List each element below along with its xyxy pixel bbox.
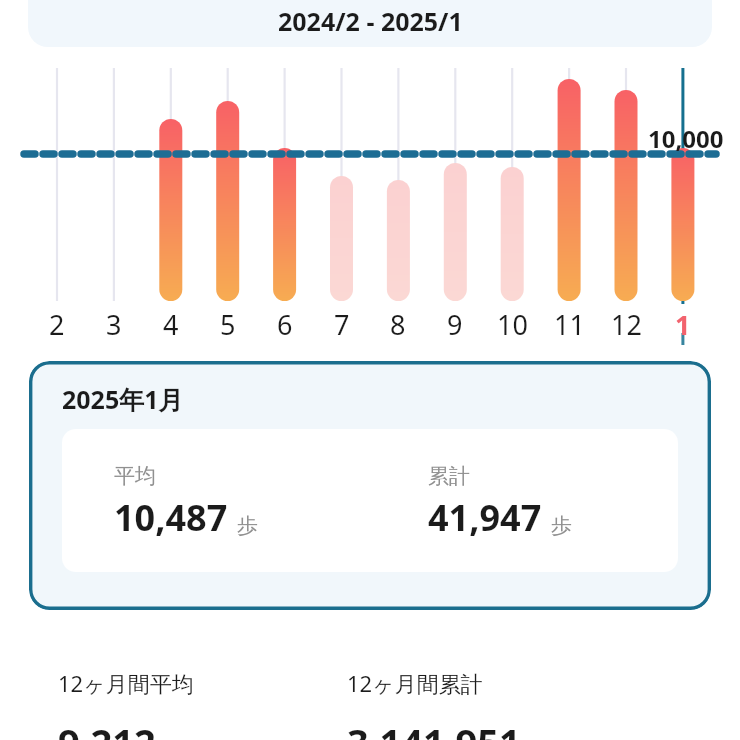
staticText: 2024/2 - 2025/1 [278,4,463,38]
staticText: 10 [497,306,528,343]
staticText: 7 [334,306,350,343]
staticText: 2025年1月 [62,382,184,416]
staticText: 4 [163,306,179,343]
button[interactable]: 2025年1月 [29,361,711,610]
staticText: 平均 [114,463,156,489]
staticText: 12ヶ月間平均 [58,668,194,698]
button[interactable]: 12ヶ月間平均 [29,637,711,740]
staticText: 11 [554,306,585,343]
staticText: 1 [675,306,691,343]
staticText: 9,212 [58,716,156,740]
staticText: 10,000 [648,122,724,155]
staticText: 歩 [551,513,572,539]
staticText: 41,947 [428,493,542,542]
staticText: 8 [390,306,406,343]
staticText: 2 [49,306,65,343]
staticText: 3,141,951 [347,716,521,740]
staticText: 5 [220,306,236,343]
staticText: 6 [277,306,293,343]
staticText: 9 [447,306,463,343]
staticText: 3 [106,306,122,343]
staticText: 12 [611,306,642,343]
staticText: 12ヶ月間累計 [347,668,483,698]
staticText: 累計 [428,463,470,489]
button[interactable]: 2024/2 - 2025/1 [28,0,712,47]
staticText: 歩 [237,513,258,539]
staticText: 10,487 [114,493,228,542]
